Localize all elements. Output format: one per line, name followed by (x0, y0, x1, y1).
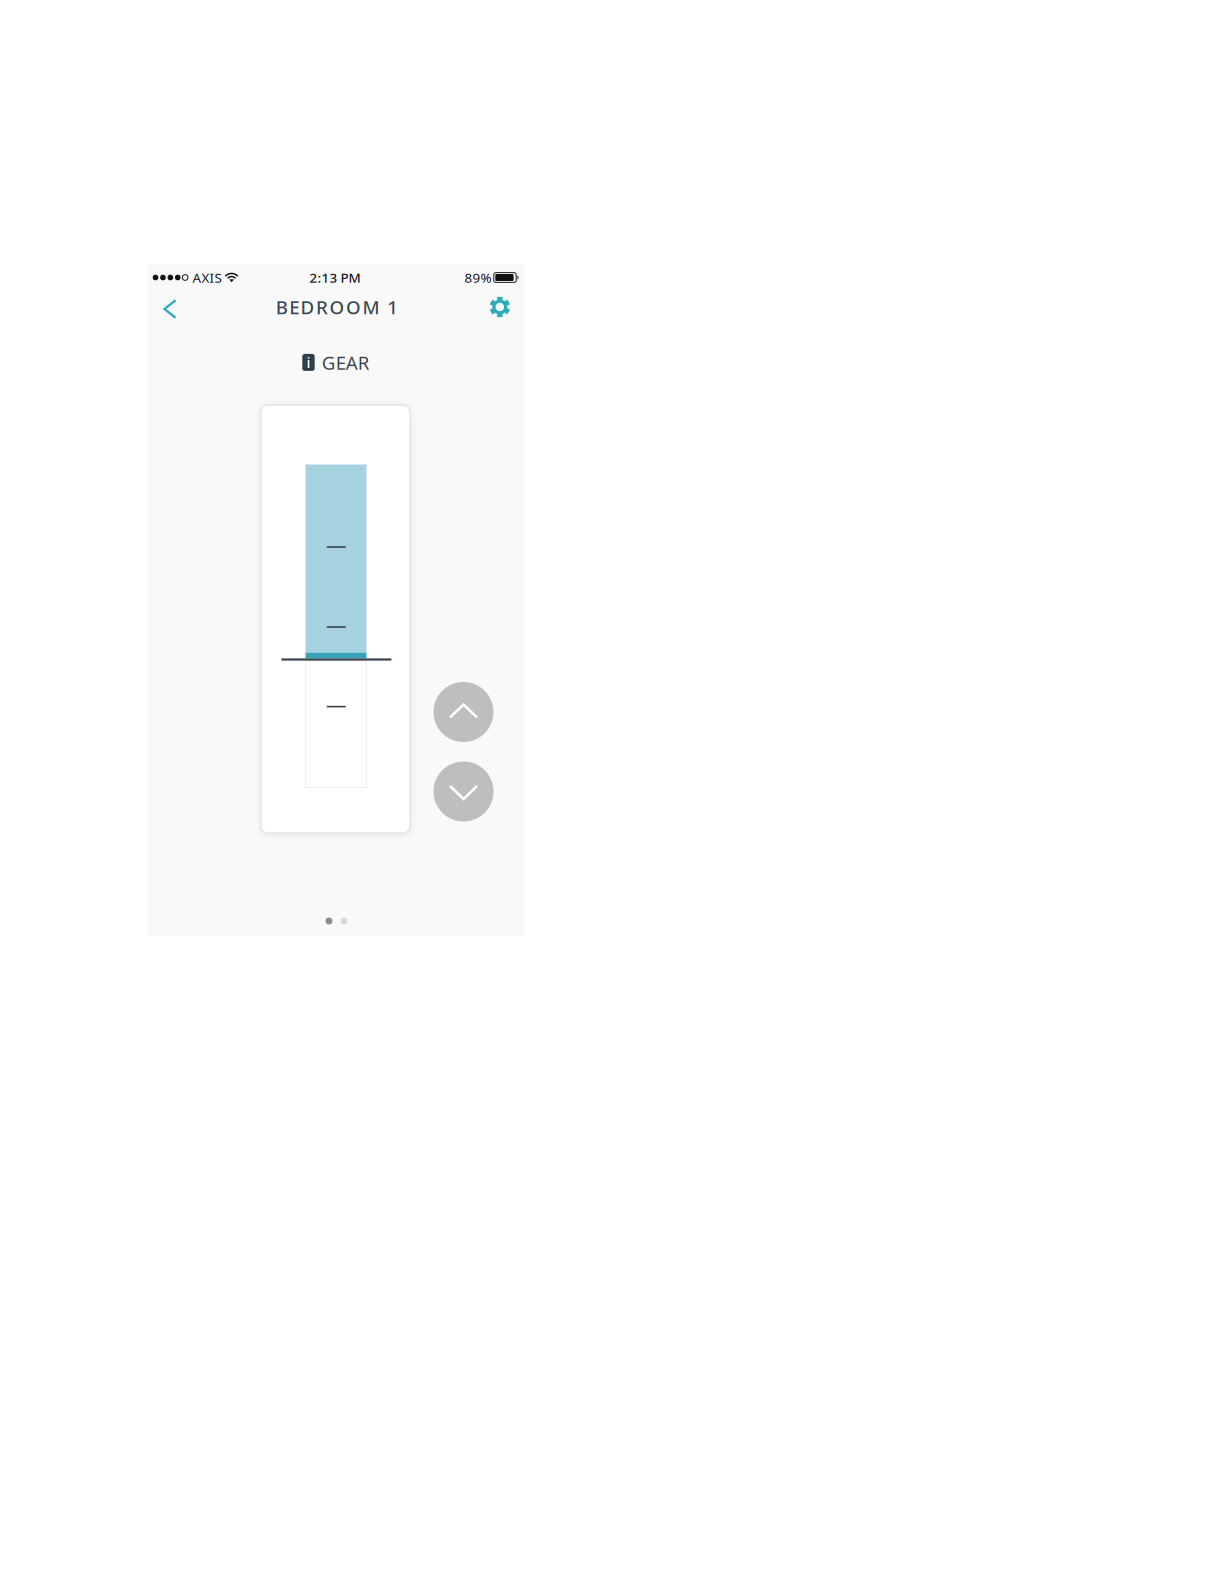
button[interactable]: Shade position (261, 405, 410, 833)
button[interactable]: Page 1 of 2 (325, 917, 347, 924)
staticText: AXIS (192, 269, 221, 286)
staticText: M (362, 295, 379, 319)
staticText: O (346, 295, 361, 319)
button[interactable]: i (302, 350, 370, 375)
button[interactable]: Raise shade (433, 682, 493, 742)
staticText: i (306, 353, 310, 372)
staticText: 2:13 PM (309, 269, 360, 286)
button[interactable]: Lower shade (433, 761, 493, 821)
staticText: GEAR (322, 350, 370, 375)
button[interactable]: Settings (479, 285, 521, 329)
staticText: D (301, 295, 315, 319)
staticText: B (276, 295, 288, 319)
staticText: 1 (387, 295, 398, 319)
staticText: E (289, 295, 299, 319)
staticText: R (316, 295, 328, 319)
staticText: 89% (465, 269, 492, 286)
button[interactable]: Back (149, 285, 191, 329)
staticText: O (329, 295, 344, 319)
